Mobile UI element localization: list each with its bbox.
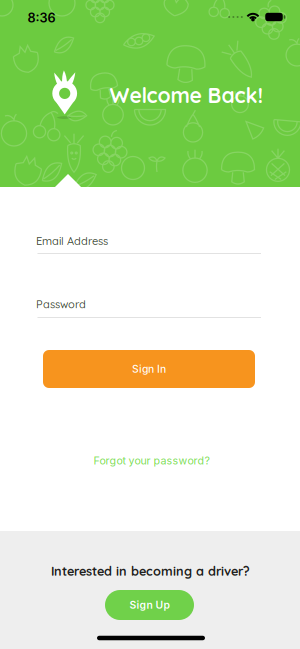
staticText: Forgot your password? <box>93 454 209 467</box>
staticText: 8:36 <box>27 10 55 26</box>
button[interactable]: Forgot your password? <box>93 454 209 467</box>
staticText: Welcome Back! <box>109 82 263 108</box>
staticText: Email Address <box>36 234 108 248</box>
button[interactable]: Sign Up <box>105 590 194 620</box>
staticText: Interested in becoming a driver? <box>51 563 250 579</box>
staticText: Sign In <box>132 363 166 375</box>
button[interactable]: Sign In <box>43 350 255 388</box>
staticText: Password <box>36 297 86 311</box>
staticText: Sign Up <box>129 599 169 611</box>
